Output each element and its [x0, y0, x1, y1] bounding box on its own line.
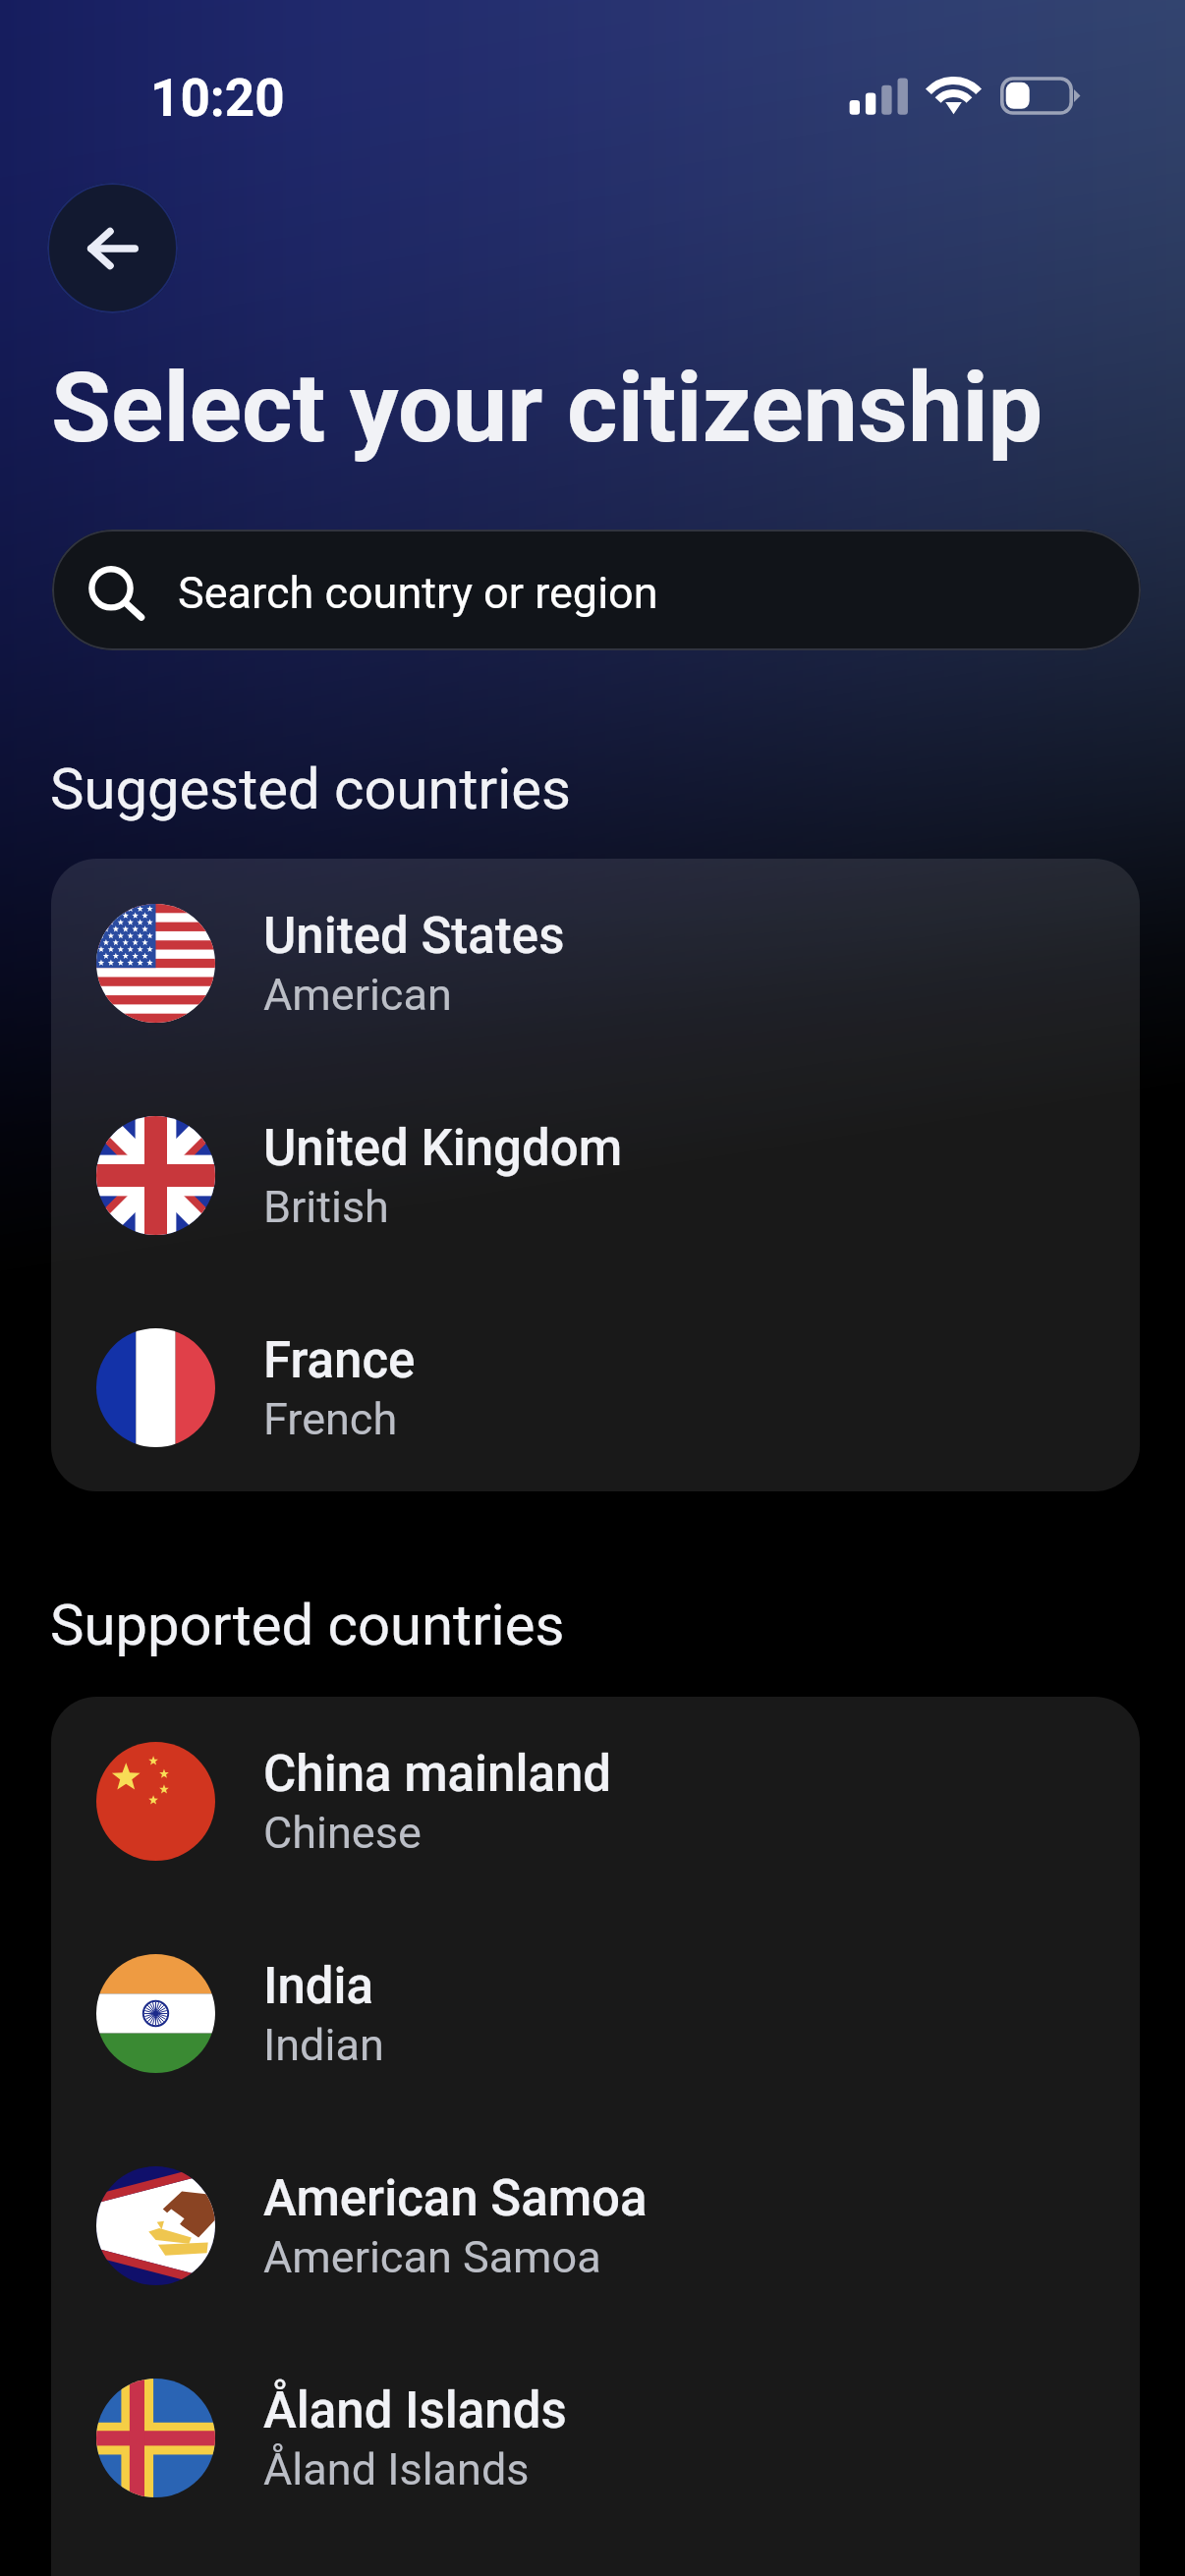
staticText: Select your citizenship — [51, 351, 1044, 465]
staticText: 10:20 — [150, 68, 285, 129]
staticText: Supported countries — [50, 1592, 565, 1658]
button[interactable]: France — [51, 1281, 1140, 1491]
button[interactable]: India — [51, 1907, 1140, 2119]
button[interactable]: American Samoa — [51, 2119, 1140, 2331]
staticText: United States — [263, 907, 565, 966]
button[interactable]: China mainland — [51, 1697, 1140, 1907]
staticText: Indian — [263, 2019, 384, 2071]
staticText: Åland Islands — [263, 2381, 567, 2440]
staticText: American Samoa — [263, 2169, 648, 2228]
staticText: British — [263, 1181, 389, 1233]
staticText: Åland Islands — [263, 2443, 530, 2495]
staticText: Suggested countries — [50, 756, 571, 822]
staticText: India — [263, 1957, 374, 2016]
staticText: France — [263, 1331, 416, 1390]
staticText: China mainland — [263, 1745, 612, 1804]
button[interactable]: Search country or region — [52, 530, 1141, 650]
button[interactable]: Åland Islands — [51, 2331, 1140, 2544]
button[interactable]: Back — [47, 183, 178, 313]
staticText: French — [263, 1393, 398, 1445]
button[interactable]: United States — [51, 859, 1140, 1069]
staticText: Search country or region — [178, 567, 658, 619]
staticText: United Kingdom — [263, 1119, 623, 1178]
button[interactable]: United Kingdom — [51, 1069, 1140, 1281]
staticText: American Samoa — [263, 2231, 601, 2283]
staticText: American — [263, 969, 452, 1021]
staticText: Chinese — [263, 1807, 422, 1859]
